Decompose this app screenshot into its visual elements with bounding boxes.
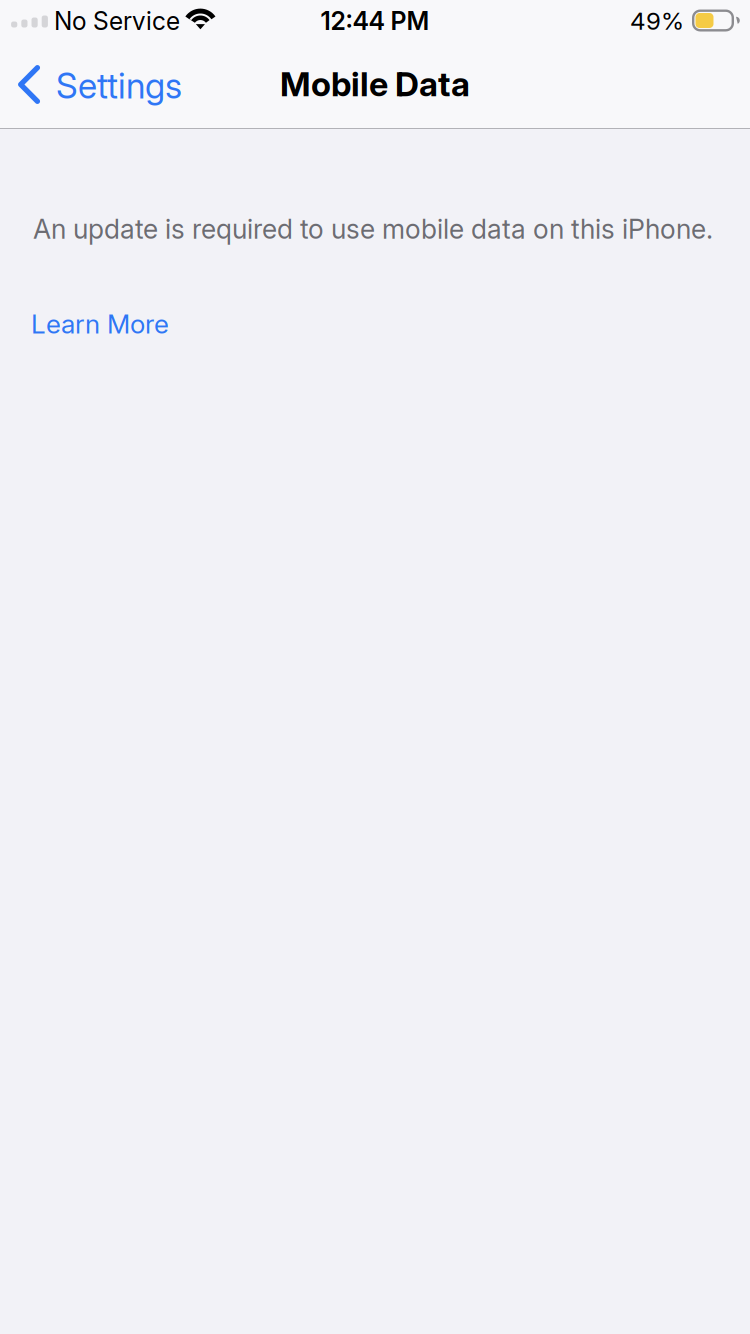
staticText: Learn More <box>31 308 169 340</box>
button[interactable]: Learn More <box>0 245 183 350</box>
staticText: 12:44 PM <box>320 6 429 36</box>
staticText: Settings <box>56 65 182 107</box>
staticText: Mobile Data <box>280 64 470 104</box>
staticText: No Service <box>54 6 180 36</box>
button[interactable]: Settings <box>0 55 194 117</box>
staticText: 49% <box>630 6 684 36</box>
staticText: An update is required to use mobile data… <box>33 213 713 245</box>
